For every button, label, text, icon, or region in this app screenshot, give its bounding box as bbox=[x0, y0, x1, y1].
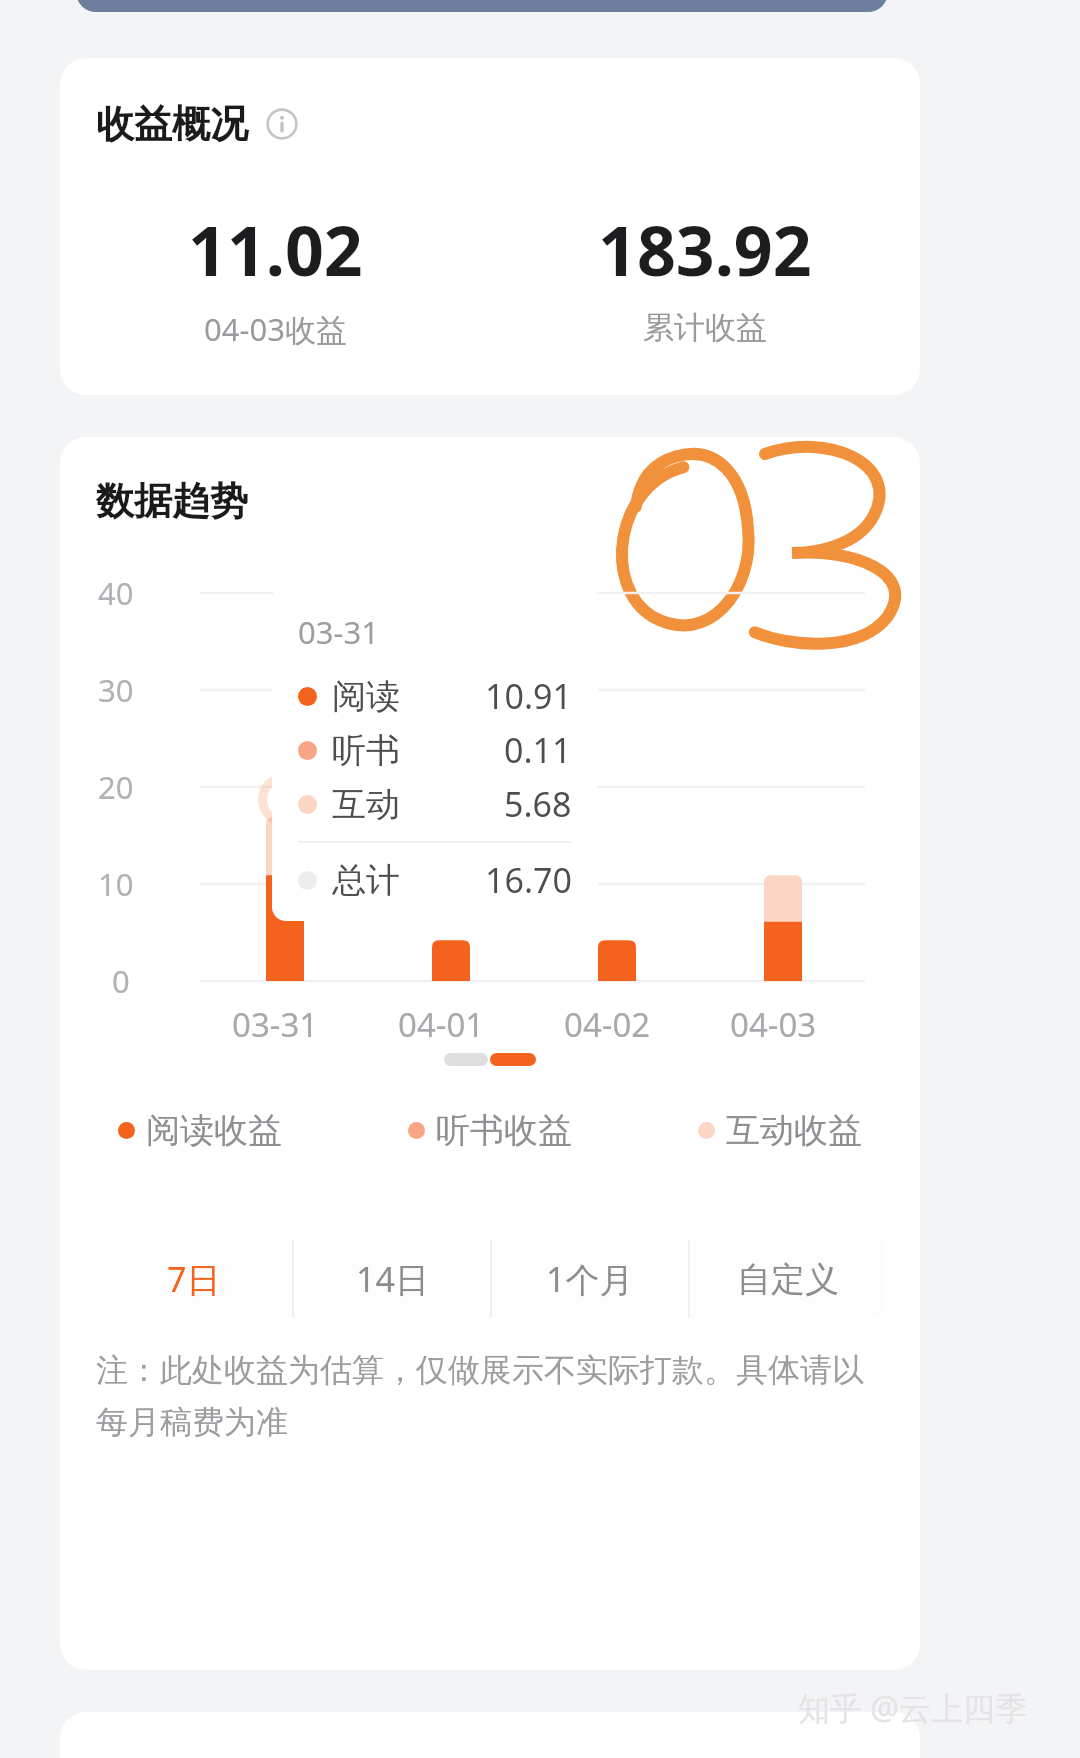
staticText: 7日 bbox=[167, 1256, 221, 1302]
button[interactable]: 互动收益 bbox=[698, 1109, 862, 1152]
button[interactable]: 7日 bbox=[96, 1240, 292, 1318]
staticText: 总计 bbox=[332, 859, 400, 902]
button[interactable]: 阅读收益 bbox=[118, 1109, 282, 1152]
staticText: 知乎 @云上四季 bbox=[798, 1686, 1028, 1730]
staticText: 自定义 bbox=[737, 1258, 839, 1301]
staticText: 16.70 bbox=[485, 857, 572, 903]
staticText: 04-03 bbox=[730, 1002, 817, 1047]
other: 收益说明 bbox=[266, 108, 298, 140]
staticText: 14日 bbox=[356, 1256, 429, 1302]
staticText: 04-03收益 bbox=[204, 308, 347, 350]
button[interactable]: 听书收益 bbox=[408, 1109, 572, 1152]
staticText: 注：此处收益为估算，仅做展示不实际打款。具体请以每月稿费为准 bbox=[96, 1350, 878, 1442]
staticText: 03-31 bbox=[232, 1002, 319, 1047]
staticText: 阅读收益 bbox=[146, 1109, 282, 1152]
staticText: 04-01 bbox=[398, 1002, 485, 1047]
staticText: 11.02 bbox=[188, 203, 363, 296]
staticText: 10.91 bbox=[485, 673, 572, 719]
staticText: 1个月 bbox=[546, 1256, 634, 1302]
button[interactable]: 收益概况 bbox=[96, 100, 298, 148]
staticText: 183.92 bbox=[598, 203, 812, 296]
staticText: 04-02 bbox=[564, 1002, 651, 1047]
staticText: 5.68 bbox=[504, 781, 572, 827]
staticText: 40 bbox=[98, 572, 134, 614]
staticText: 阅读 bbox=[332, 675, 400, 718]
staticText: 听书收益 bbox=[436, 1109, 572, 1152]
staticText: 听书 bbox=[332, 729, 400, 772]
staticText: 0.11 bbox=[504, 727, 572, 773]
staticText: 累计收益 bbox=[643, 308, 767, 347]
staticText: 收益概况 bbox=[96, 100, 248, 148]
button[interactable]: 自定义 bbox=[690, 1240, 886, 1318]
button[interactable]: 1个月 bbox=[492, 1240, 688, 1318]
staticText: 20 bbox=[98, 766, 134, 808]
staticText: 10 bbox=[98, 863, 134, 905]
staticText: 数据趋势 bbox=[96, 477, 248, 525]
staticText: 互动收益 bbox=[726, 1109, 862, 1152]
button[interactable]: 14日 bbox=[294, 1240, 490, 1318]
staticText: 0 bbox=[112, 960, 130, 1002]
staticText: 30 bbox=[98, 669, 134, 711]
staticText: 互动 bbox=[332, 783, 400, 826]
staticText: 03-31 bbox=[298, 611, 379, 653]
